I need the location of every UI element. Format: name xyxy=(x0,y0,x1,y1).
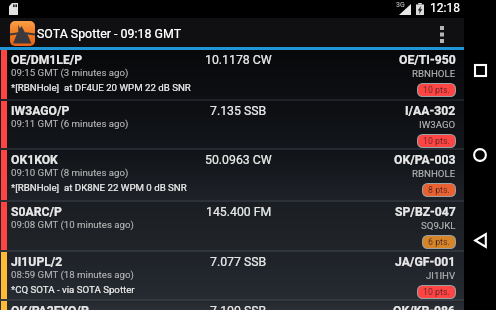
staticText: OK/KR-086 xyxy=(393,304,456,310)
staticText: IW3AGO xyxy=(419,119,456,130)
staticText: 7.100 SSB xyxy=(210,304,267,310)
staticText: 09:08 GMT (10 minutes ago) xyxy=(11,219,134,230)
button[interactable]: S0ARC/P xyxy=(0,202,464,250)
staticText: *CQ SOTA - via SOTA Spotter xyxy=(11,284,135,295)
staticText: 8 pts. xyxy=(428,185,450,195)
staticText: 10 pts. xyxy=(423,136,450,146)
staticText: 6 pts. xyxy=(428,237,450,247)
staticText: 7.077 SSB xyxy=(210,255,267,269)
staticText: 09:11 GMT (6 minutes ago) xyxy=(11,118,129,129)
staticText: SQ9JKL xyxy=(421,220,456,231)
staticText: 10.1178 CW xyxy=(205,53,272,67)
staticText: S0ARC/P xyxy=(11,205,62,219)
staticText: SP/BZ-047 xyxy=(395,205,456,219)
staticText: JI1UPL/2 xyxy=(11,255,63,269)
staticText: 3G xyxy=(396,1,405,9)
staticText: OK1KOK xyxy=(11,153,58,167)
staticText: JA/GF-001 xyxy=(395,255,456,269)
staticText: 10 pts. xyxy=(423,85,450,95)
button[interactable]: Home xyxy=(464,139,496,171)
staticText: IW3AGO/P xyxy=(11,104,70,118)
staticText: 09:15 GMT (3 minutes ago) xyxy=(11,67,129,78)
button[interactable]: OK/PA2EYQ/P xyxy=(0,301,464,310)
staticText: OK/PA-003 xyxy=(394,153,456,167)
staticText: I/AA-302 xyxy=(405,104,456,118)
staticText: RBNHOLE xyxy=(412,168,456,179)
button[interactable]: More options xyxy=(430,18,454,50)
staticText: 10 pts. xyxy=(423,287,450,297)
staticText: 145.400 FM xyxy=(206,205,272,219)
button[interactable]: Recent apps xyxy=(464,54,496,86)
staticText: SOTA Spotter - 09:18 GMT xyxy=(37,26,182,41)
staticText: OE/TI-950 xyxy=(399,53,456,67)
staticText: *[RBNHole] at DF4UE 20 WPM 22 dB SNR xyxy=(11,82,191,93)
staticText: 09:10 GMT (8 minutes ago) xyxy=(11,167,129,178)
staticText: RBNHOLE xyxy=(412,68,456,79)
staticText: OK/PA2EYQ/P xyxy=(11,304,89,310)
button[interactable]: OK1KOK xyxy=(0,150,464,200)
staticText: OE/DM1LE/P xyxy=(11,53,83,67)
staticText: 7.135 SSB xyxy=(210,104,267,118)
staticText: 08:59 GMT (18 minutes ago) xyxy=(11,269,134,280)
button[interactable]: IW3AGO/P xyxy=(0,101,464,148)
staticText: *[RBNHole] at DK8NE 22 WPM 0 dB SNR xyxy=(11,182,187,193)
staticText: 50.0963 CW xyxy=(205,153,272,167)
button[interactable]: Back xyxy=(464,224,496,256)
button[interactable]: JI1UPL/2 xyxy=(0,252,464,299)
staticText: 12:18 xyxy=(430,1,460,15)
staticText: JI1IHV xyxy=(426,270,456,281)
button[interactable]: OE/DM1LE/P xyxy=(0,50,464,99)
